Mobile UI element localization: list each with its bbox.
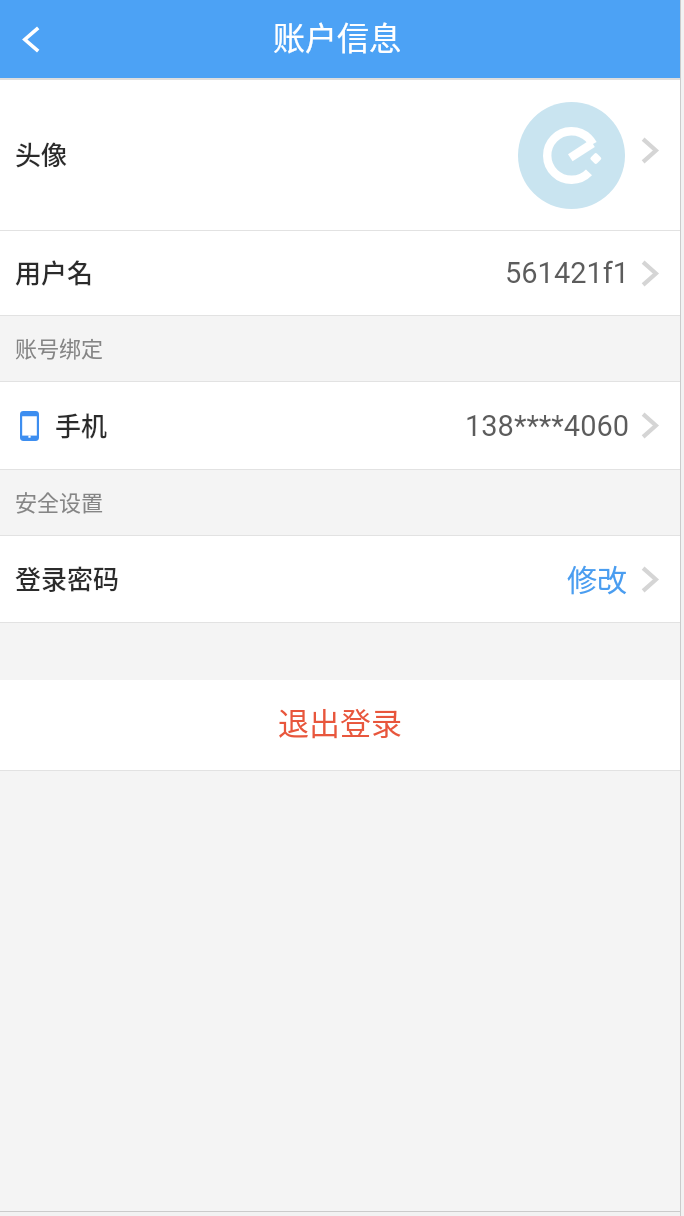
button[interactable]: Back [0,0,62,78]
staticText: 登录密码 [15,559,120,597]
staticText: 账户信息 [273,13,402,59]
staticText: 561421f1 [505,256,630,290]
staticText: 手机 [55,406,108,444]
staticText: 头像 [15,135,68,173]
button[interactable]: 手机 [0,382,680,469]
button[interactable]: 用户名 [0,231,680,315]
staticText: 用户名 [15,253,94,291]
staticText: 退出登录 [278,699,402,744]
staticText: 138****4060 [465,409,630,443]
button[interactable]: 登录密码 [0,536,680,622]
staticText: 账号绑定 [15,331,104,363]
staticText: 修改 [567,556,627,599]
button[interactable]: 退出登录 [0,680,680,770]
staticText: 安全设置 [15,485,104,517]
button[interactable]: 头像 [0,80,680,230]
